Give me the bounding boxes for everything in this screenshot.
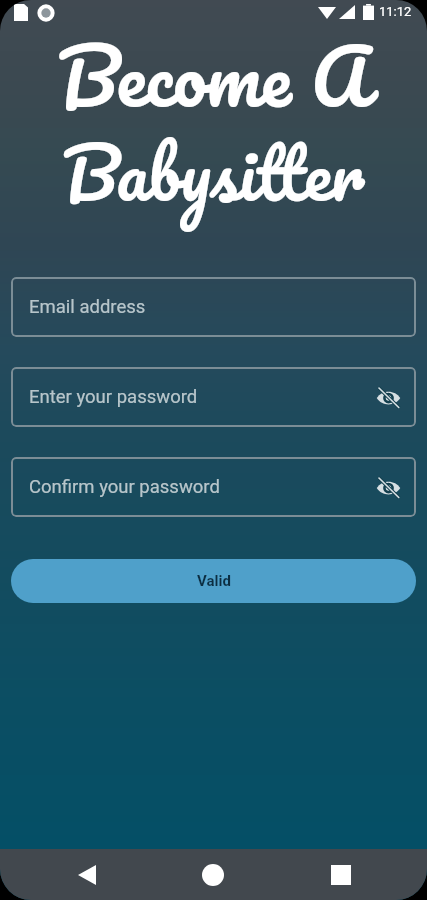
staticText: Email address [29, 296, 146, 318]
staticText: Become A [0, 11, 427, 141]
button[interactable]: Toggle password visibility [372, 471, 404, 503]
staticText: Enter your password [29, 386, 198, 408]
button[interactable]: Email address [11, 277, 416, 337]
button[interactable]: Toggle password visibility [372, 381, 404, 413]
button[interactable]: Recent apps [317, 849, 365, 900]
staticText: 11:12 [379, 4, 412, 19]
staticText: Babysitter [0, 112, 427, 231]
button[interactable]: Back [63, 849, 111, 900]
staticText: Confirm your password [29, 476, 220, 498]
button[interactable]: Confirm your password [11, 457, 416, 517]
button[interactable]: Home [189, 849, 237, 900]
button[interactable]: Enter your password [11, 367, 416, 427]
staticText: Valid [197, 572, 231, 590]
button[interactable]: Valid [11, 559, 416, 603]
